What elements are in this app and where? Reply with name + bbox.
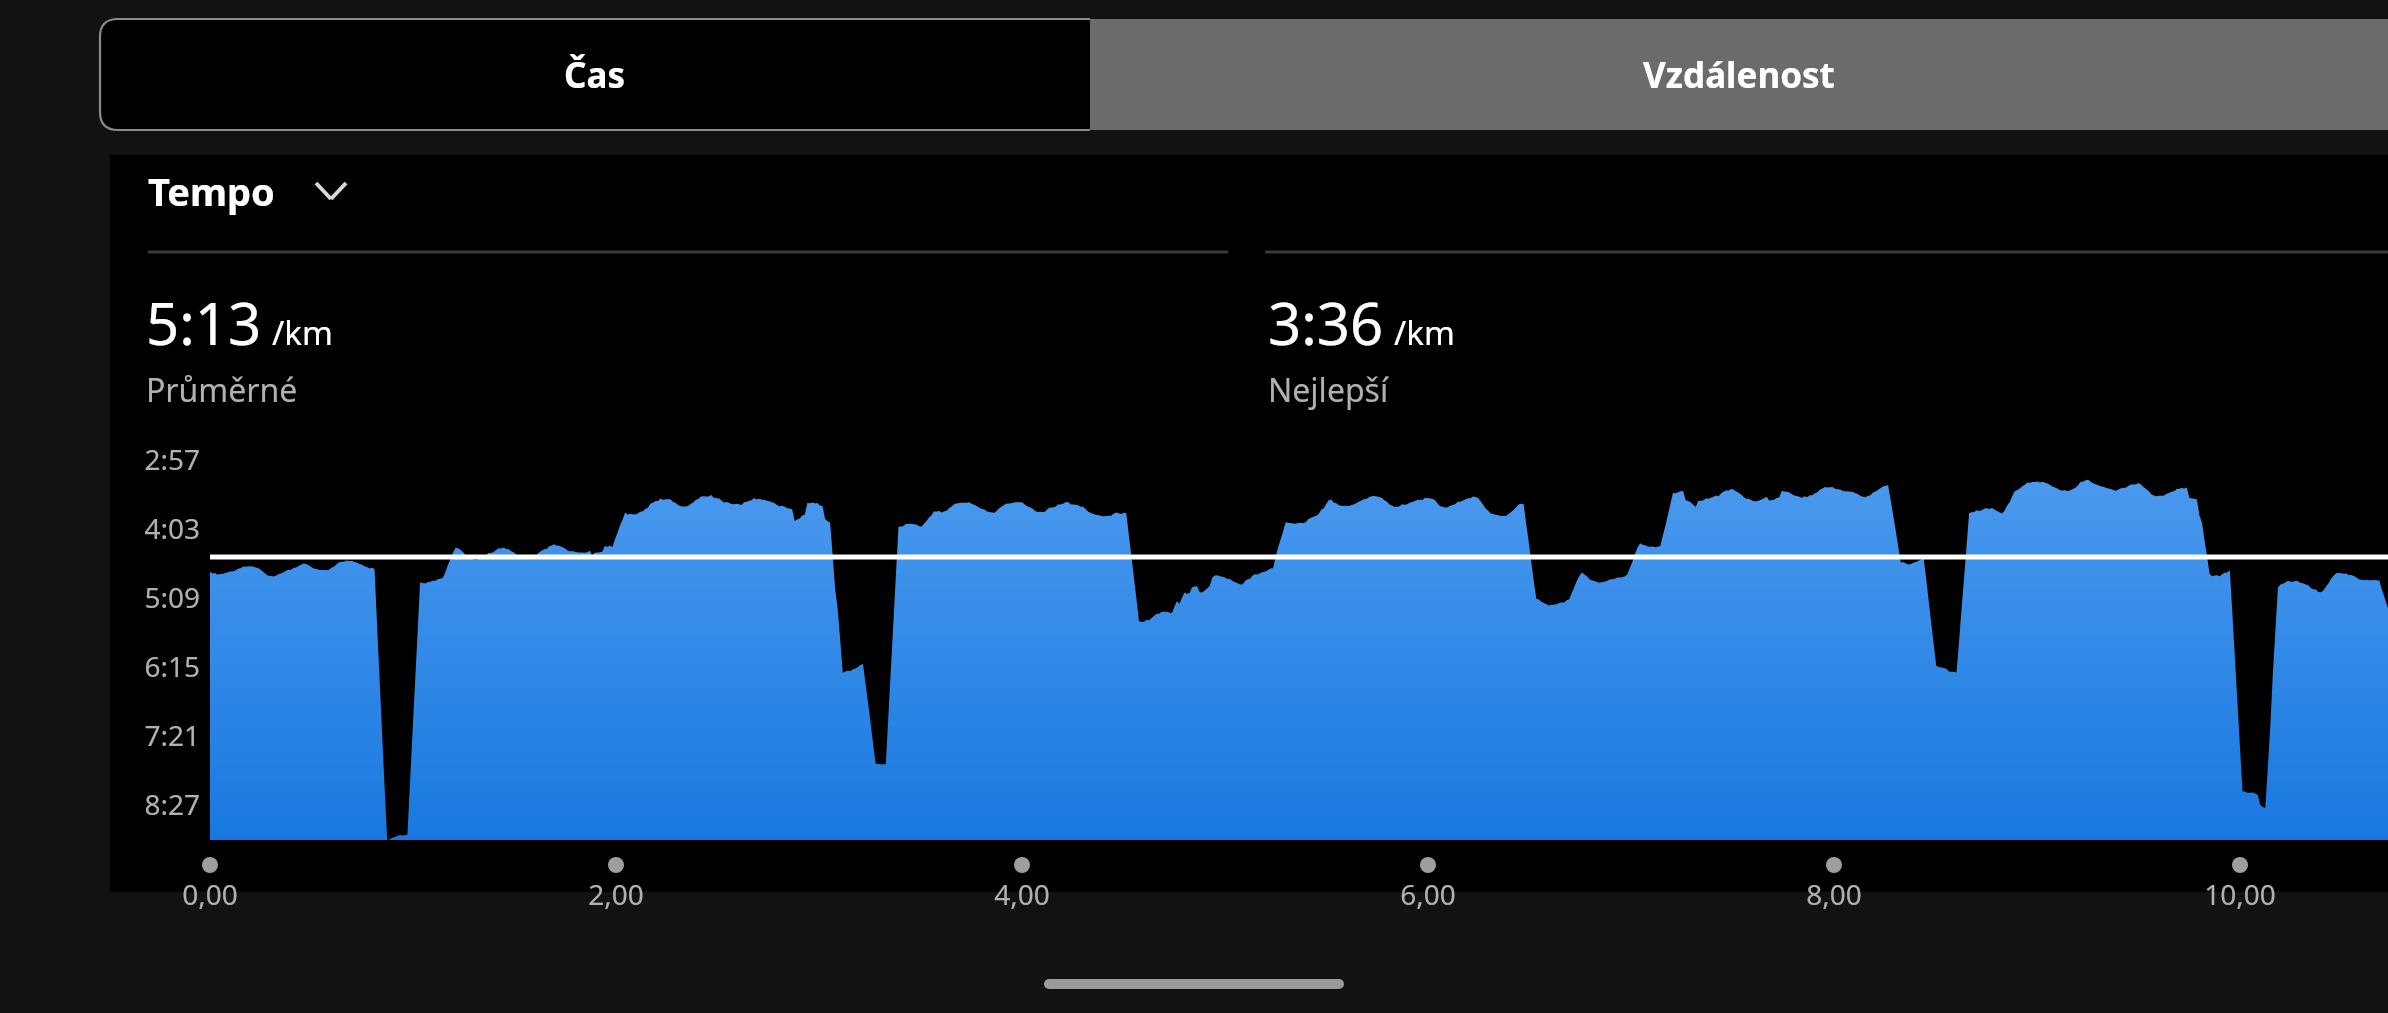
- button[interactable]: Vzdálenost: [1090, 19, 2388, 130]
- staticText: 10,00: [2170, 875, 2310, 913]
- staticText: 2,00: [546, 875, 686, 913]
- staticText: Vzdálenost: [1643, 51, 1835, 99]
- staticText: 4:03: [110, 509, 200, 547]
- staticText: 6:15: [110, 647, 200, 685]
- staticText: Nejlepší: [1268, 368, 1389, 412]
- staticText: /km: [272, 310, 333, 355]
- staticText: 8:27: [110, 785, 200, 823]
- staticText: 5:09: [110, 578, 200, 616]
- staticText: 6,00: [1358, 875, 1498, 913]
- other: Expand metric selector: [311, 171, 351, 211]
- staticText: 0,00: [140, 875, 280, 913]
- button[interactable]: Tempo: [148, 165, 351, 217]
- staticText: 7:21: [110, 716, 200, 754]
- staticText: 8,00: [1764, 875, 1904, 913]
- staticText: Průměrné: [146, 368, 298, 412]
- button[interactable]: Čas: [100, 19, 1090, 130]
- staticText: 2:57: [110, 440, 200, 478]
- staticText: /km: [1394, 310, 1455, 355]
- staticText: 3:36: [1268, 283, 1384, 362]
- staticText: Čas: [564, 51, 626, 99]
- staticText: Tempo: [148, 165, 275, 217]
- staticText: 5:13: [146, 283, 262, 362]
- staticText: 4,00: [952, 875, 1092, 913]
